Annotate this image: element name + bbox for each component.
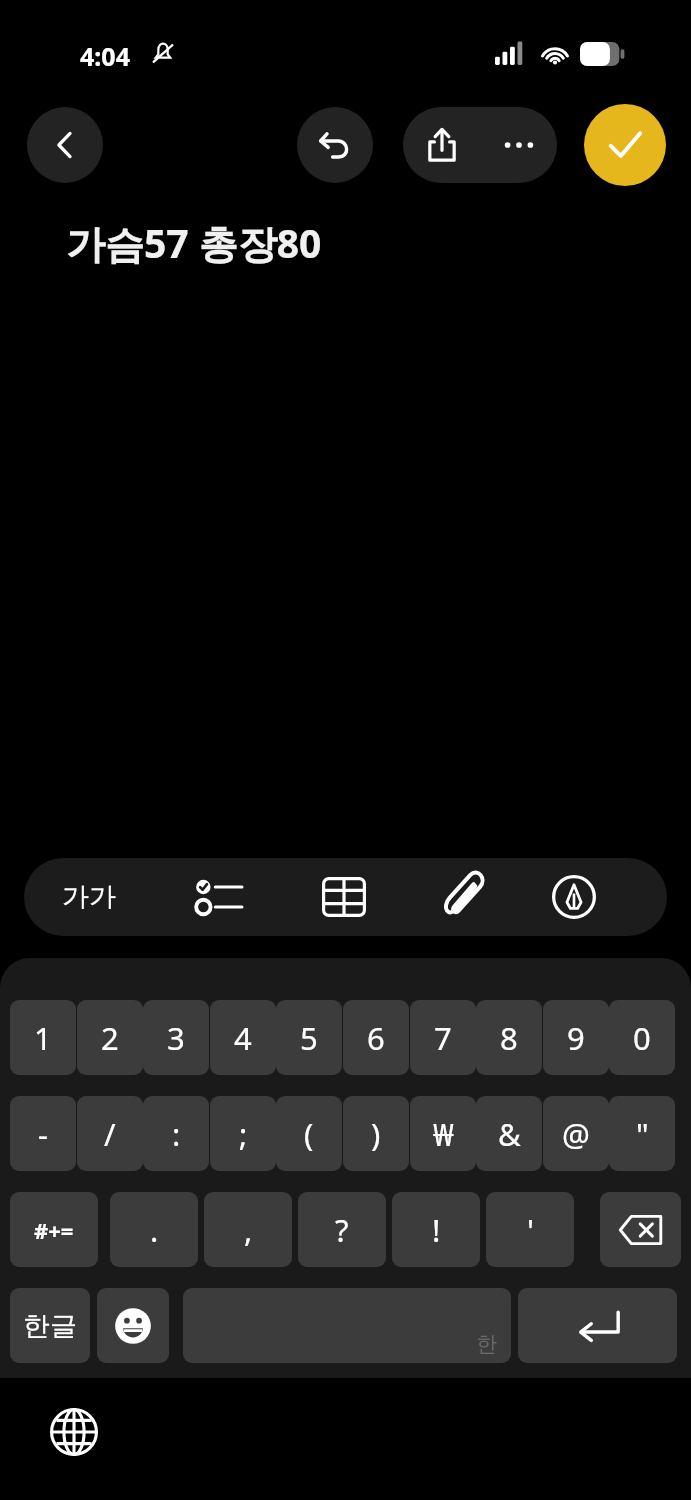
button[interactable]: ; bbox=[210, 1096, 276, 1171]
button[interactable]: 1 bbox=[10, 1000, 76, 1075]
button[interactable]: @ bbox=[543, 1096, 609, 1171]
button[interactable]: " bbox=[609, 1096, 675, 1171]
button[interactable]: Space bbox=[183, 1288, 511, 1363]
button[interactable]: 0 bbox=[609, 1000, 675, 1075]
button[interactable]: #+= bbox=[10, 1192, 98, 1267]
button[interactable]: Share bbox=[403, 107, 480, 183]
staticText: 가슴57 총장80 bbox=[66, 216, 322, 269]
button[interactable]: Undo bbox=[297, 107, 373, 183]
staticText: 한글 bbox=[23, 1309, 77, 1343]
staticText: 0 bbox=[633, 1017, 651, 1059]
button[interactable]: 9 bbox=[543, 1000, 609, 1075]
staticText: , bbox=[244, 1209, 253, 1251]
button[interactable]: Checklist bbox=[174, 858, 264, 936]
staticText: " bbox=[636, 1113, 649, 1155]
staticText: 7 bbox=[434, 1017, 452, 1059]
button[interactable]: Back bbox=[27, 107, 103, 183]
button[interactable]: Attach bbox=[419, 858, 509, 936]
button[interactable]: Emoji bbox=[97, 1288, 169, 1363]
staticText: 2 bbox=[101, 1017, 119, 1059]
staticText: : bbox=[172, 1113, 181, 1155]
staticText: ! bbox=[432, 1209, 441, 1251]
button[interactable]: 4 bbox=[210, 1000, 276, 1075]
staticText: ; bbox=[239, 1113, 248, 1155]
button[interactable]: More options bbox=[480, 107, 557, 183]
button[interactable]: ( bbox=[276, 1096, 342, 1171]
button[interactable]: ₩ bbox=[410, 1096, 476, 1171]
button[interactable]: Enter bbox=[518, 1288, 677, 1363]
button[interactable]: Change language bbox=[40, 1398, 108, 1466]
button[interactable]: Done bbox=[584, 104, 666, 186]
staticText: 3 bbox=[167, 1017, 185, 1059]
staticText: 8 bbox=[500, 1017, 518, 1059]
button[interactable]: : bbox=[143, 1096, 209, 1171]
button[interactable]: 6 bbox=[343, 1000, 409, 1075]
button[interactable]: ? bbox=[298, 1192, 386, 1267]
staticText: . bbox=[150, 1209, 159, 1251]
staticText: @ bbox=[562, 1113, 590, 1155]
staticText: ( bbox=[304, 1113, 314, 1155]
button[interactable]: 7 bbox=[410, 1000, 476, 1075]
staticText: ) bbox=[371, 1113, 381, 1155]
button[interactable]: 3 bbox=[143, 1000, 209, 1075]
button[interactable]: ) bbox=[343, 1096, 409, 1171]
button[interactable]: Backspace bbox=[600, 1192, 681, 1267]
staticText: 5 bbox=[300, 1017, 318, 1059]
button[interactable]: Draw bbox=[529, 858, 619, 936]
button[interactable]: 8 bbox=[476, 1000, 542, 1075]
staticText: 가가 bbox=[62, 880, 116, 914]
button[interactable]: More formatting bbox=[634, 858, 667, 936]
staticText: 6 bbox=[367, 1017, 385, 1059]
button[interactable]: , bbox=[204, 1192, 292, 1267]
button[interactable]: & bbox=[476, 1096, 542, 1171]
staticText: 1 bbox=[34, 1017, 52, 1059]
button[interactable]: 2 bbox=[77, 1000, 143, 1075]
button[interactable]: / bbox=[77, 1096, 143, 1171]
button[interactable]: - bbox=[10, 1096, 76, 1171]
staticText: ₩ bbox=[433, 1113, 454, 1155]
button[interactable]: 5 bbox=[276, 1000, 342, 1075]
staticText: ? bbox=[335, 1209, 349, 1251]
button[interactable]: ' bbox=[486, 1192, 574, 1267]
staticText: & bbox=[498, 1113, 521, 1155]
staticText: 4 bbox=[234, 1017, 252, 1059]
button[interactable]: 가가 bbox=[34, 858, 144, 936]
button[interactable]: . bbox=[110, 1192, 198, 1267]
staticText: 4:04 bbox=[80, 39, 130, 73]
button[interactable]: Table bbox=[299, 858, 389, 936]
staticText: 9 bbox=[567, 1017, 585, 1059]
staticText: #+= bbox=[34, 1215, 74, 1245]
staticText: ' bbox=[527, 1209, 534, 1251]
button[interactable]: 한글 bbox=[10, 1288, 90, 1363]
staticText: / bbox=[104, 1113, 116, 1155]
staticText: - bbox=[38, 1113, 48, 1155]
staticText: 한 bbox=[476, 1331, 497, 1357]
button[interactable]: ! bbox=[392, 1192, 480, 1267]
